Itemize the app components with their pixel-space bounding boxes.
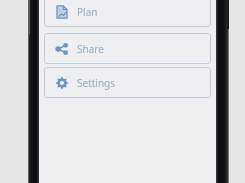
button[interactable]: Settings [44,67,211,98]
staticText: Plan [77,5,98,19]
button[interactable]: Share [44,33,211,64]
other: Share [55,42,69,56]
other: Plan [55,5,69,19]
other: Settings [55,76,69,90]
staticText: Share [77,42,104,56]
button[interactable]: Plan [44,0,211,27]
staticText: Settings [77,76,116,90]
